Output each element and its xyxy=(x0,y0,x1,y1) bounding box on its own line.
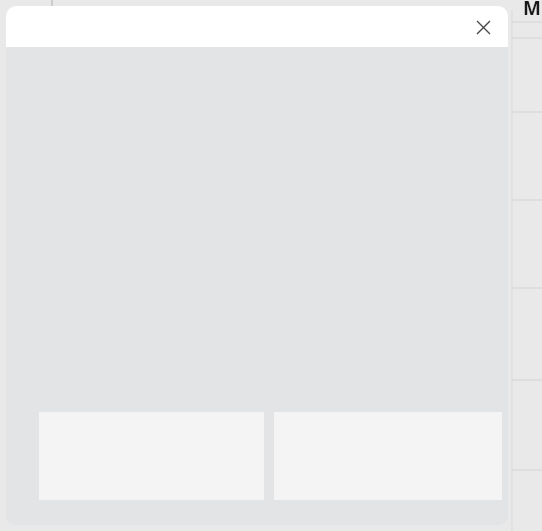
button[interactable]: Close xyxy=(467,11,499,43)
staticText: M xyxy=(523,0,541,21)
